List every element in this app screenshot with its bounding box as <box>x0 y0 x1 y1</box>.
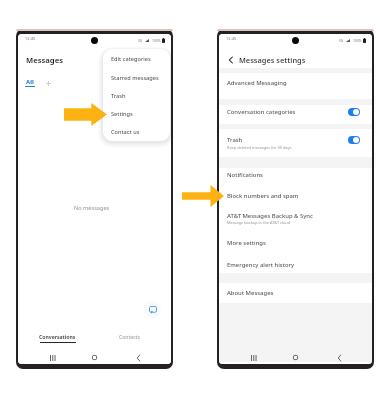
staticText: 100% <box>353 38 362 43</box>
staticText: 5G <box>339 39 344 43</box>
staticText: Starred messages <box>111 74 159 82</box>
button[interactable]: All <box>24 78 36 87</box>
button[interactable]: Home <box>288 351 302 364</box>
staticText: More settings <box>227 239 266 247</box>
button[interactable]: Back <box>332 351 346 364</box>
staticText: Conversations <box>39 334 76 341</box>
button[interactable]: Back <box>131 351 145 364</box>
button[interactable] <box>219 103 372 121</box>
staticText: 5G <box>138 39 143 43</box>
staticText: AT&T Messages Backup & Sync <box>227 212 313 220</box>
staticText: Message backup in the AT&T cloud <box>227 220 291 225</box>
button[interactable]: Trash <box>103 87 170 105</box>
staticText: Advanced Messaging <box>227 79 287 87</box>
button[interactable] <box>219 167 372 185</box>
staticText: Emergency alert history <box>227 261 295 269</box>
button[interactable] <box>219 284 372 302</box>
button[interactable]: Conversations <box>18 334 94 348</box>
button[interactable]: Add category <box>43 78 53 88</box>
button[interactable] <box>219 235 372 253</box>
button[interactable] <box>219 131 372 157</box>
staticText: Block numbers and spam <box>227 192 299 200</box>
button[interactable]: Edit categories <box>103 50 170 68</box>
staticText: Settings <box>111 110 133 118</box>
staticText: Trash <box>111 92 126 100</box>
staticText: About Messages <box>227 289 274 297</box>
button[interactable]: Contact us <box>103 123 170 141</box>
button[interactable]: New conversation <box>144 301 161 318</box>
button[interactable] <box>219 207 372 233</box>
staticText: Trash <box>227 136 243 144</box>
staticText: Contact us <box>111 128 140 136</box>
staticText: 12:45 <box>25 36 36 42</box>
staticText: Notifications <box>227 171 263 179</box>
staticText: No messages <box>74 204 110 212</box>
button[interactable] <box>219 74 372 92</box>
button[interactable]: Recents <box>45 351 59 364</box>
staticText: Conversation categories <box>227 108 296 116</box>
button[interactable] <box>219 257 372 275</box>
button[interactable]: Starred messages <box>103 69 170 87</box>
staticText: All <box>26 78 34 86</box>
button[interactable]: Home <box>87 351 101 364</box>
button[interactable]: Contacts <box>94 334 171 348</box>
button[interactable]: Back <box>225 54 237 66</box>
button[interactable]: Recents <box>246 351 260 364</box>
staticText: Contacts <box>119 334 140 341</box>
staticText: Messages <box>26 55 64 65</box>
staticText: 100% <box>152 38 161 43</box>
staticText: Messages settings <box>239 55 306 65</box>
button[interactable] <box>219 188 372 206</box>
staticText: Edit categories <box>111 55 151 63</box>
button[interactable]: Settings <box>103 105 170 123</box>
staticText: 12:45 <box>226 36 237 42</box>
staticText: Keep deleted messages for 30 days <box>227 145 292 150</box>
